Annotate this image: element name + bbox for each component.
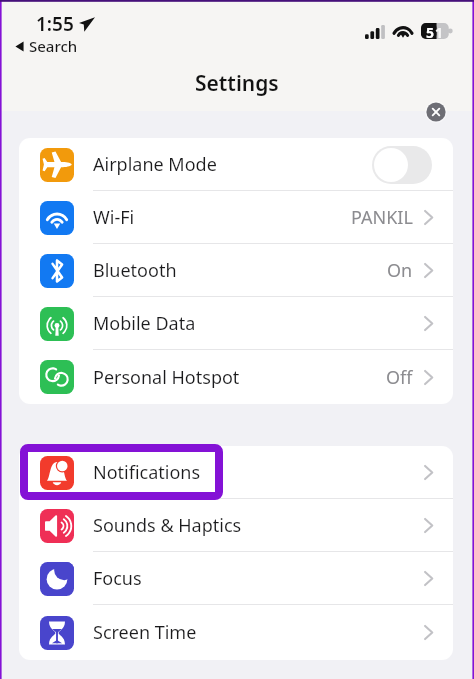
staticText: Personal Hotspot <box>93 365 240 390</box>
staticText: Screen Time <box>93 620 197 645</box>
button[interactable]: Mobile Data <box>19 297 453 350</box>
button[interactable]: Focus <box>19 552 453 605</box>
staticText: Settings <box>195 69 279 98</box>
button[interactable]: Wi-Fi <box>19 191 453 244</box>
button[interactable]: Notifications <box>19 446 453 499</box>
staticText: PANKIL <box>351 205 413 230</box>
staticText: Notifications <box>93 460 201 485</box>
button[interactable]: Search <box>15 36 78 56</box>
staticText: Bluetooth <box>93 258 177 283</box>
staticText: Off <box>386 365 413 390</box>
button[interactable]: Close <box>424 100 448 124</box>
staticText: 5 <box>426 23 435 39</box>
button[interactable]: Bluetooth <box>19 244 453 297</box>
staticText: On <box>387 258 413 283</box>
staticText: Focus <box>93 566 142 591</box>
staticText: Airplane Mode <box>93 152 217 177</box>
staticText: 1 <box>435 23 444 39</box>
staticText: Sounds & Haptics <box>93 513 242 538</box>
button[interactable]: Airplane Mode toggle <box>372 146 432 184</box>
button[interactable]: Airplane Mode <box>19 138 453 191</box>
button[interactable]: Screen Time <box>19 605 453 660</box>
staticText: Wi-Fi <box>93 205 135 230</box>
staticText: 1:55 <box>36 11 74 37</box>
button[interactable]: Personal Hotspot <box>19 350 453 404</box>
button[interactable]: Sounds & Haptics <box>19 499 453 552</box>
staticText: Mobile Data <box>93 311 196 336</box>
staticText: Search <box>29 36 78 56</box>
